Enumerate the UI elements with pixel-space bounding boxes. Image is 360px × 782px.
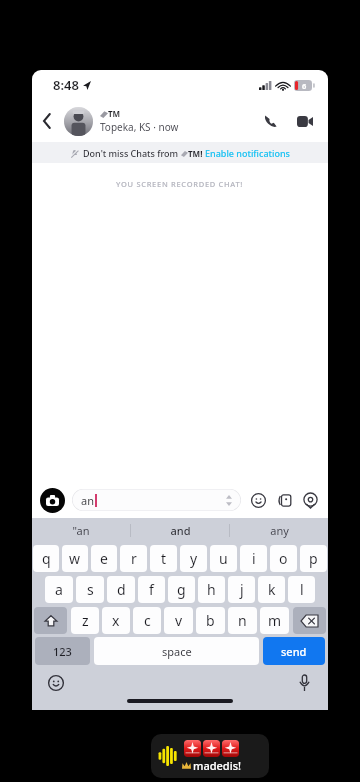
button[interactable]: Video call	[290, 106, 320, 136]
button[interactable]: z	[71, 607, 99, 634]
staticText: g	[177, 580, 186, 599]
staticText: 123	[53, 644, 72, 659]
staticText: e	[100, 549, 108, 568]
staticText: v	[175, 611, 183, 630]
staticText: Enable notifications	[205, 147, 290, 159]
staticText: u	[219, 549, 228, 568]
button[interactable]: Voice call	[256, 106, 286, 136]
button[interactable]: i	[240, 545, 267, 572]
button[interactable]: r	[120, 545, 147, 572]
button[interactable]: w	[62, 545, 88, 572]
button[interactable]: c	[133, 607, 161, 634]
button[interactable]: j	[228, 576, 255, 603]
staticText: y	[190, 549, 198, 568]
button[interactable]: Emoji keyboard	[46, 673, 66, 693]
button[interactable]: send	[263, 637, 325, 665]
button[interactable]: space	[94, 637, 259, 665]
staticText: madedis!	[193, 758, 241, 773]
staticText: "an	[72, 523, 90, 538]
staticText: l	[300, 580, 304, 599]
staticText: d	[117, 580, 126, 599]
button[interactable]: and	[131, 518, 229, 543]
button[interactable]: q	[33, 545, 59, 572]
staticText: 8:48	[53, 76, 79, 94]
staticText: j	[240, 580, 244, 599]
button[interactable]: an	[72, 489, 241, 511]
staticText: and	[170, 523, 191, 538]
button[interactable]: t	[150, 545, 177, 572]
staticText: i	[252, 549, 256, 568]
button[interactable]: 123	[35, 637, 90, 665]
staticText: any	[270, 523, 289, 538]
button[interactable]: y	[180, 545, 207, 572]
staticText: space	[162, 644, 192, 659]
staticText: f	[149, 580, 154, 599]
button[interactable]: Backspace	[293, 607, 326, 634]
button[interactable]: b	[196, 607, 225, 634]
button[interactable]: Back	[32, 106, 62, 136]
staticText: 6	[302, 81, 307, 91]
staticText: n	[238, 611, 247, 630]
staticText: b	[206, 611, 215, 630]
staticText: TM	[108, 108, 121, 119]
staticText: m	[268, 611, 282, 630]
staticText: c	[144, 611, 151, 630]
button[interactable]: k	[258, 576, 285, 603]
button[interactable]: "an	[32, 518, 130, 543]
button[interactable]: o	[270, 545, 297, 572]
button[interactable]: v	[164, 607, 193, 634]
button[interactable]: l	[288, 576, 315, 603]
button[interactable]: Location	[300, 490, 320, 510]
button[interactable]: h	[198, 576, 225, 603]
staticText: r	[131, 549, 137, 568]
staticText: Topeka, KS · now	[100, 120, 179, 134]
button[interactable]: Don't miss Chats from	[32, 142, 328, 163]
staticText: YOU SCREEN RECORDED CHAT!	[116, 179, 244, 189]
button[interactable]: s	[76, 576, 104, 603]
button[interactable]: e	[91, 545, 117, 572]
button[interactable]: u	[210, 545, 237, 572]
button[interactable]: Emoji	[248, 490, 268, 510]
button[interactable]: m	[260, 607, 289, 634]
staticText: z	[82, 611, 89, 630]
button[interactable]: x	[102, 607, 130, 634]
button[interactable]: Stickers	[274, 490, 294, 510]
button[interactable]: Camera	[40, 488, 65, 513]
staticText: h	[207, 580, 216, 599]
staticText: TM!	[188, 148, 205, 159]
staticText: an	[81, 493, 94, 508]
staticText: send	[281, 644, 307, 659]
staticText: x	[112, 611, 120, 630]
button[interactable]: Voice input	[294, 673, 314, 693]
button[interactable]: g	[168, 576, 195, 603]
button[interactable]: d	[107, 576, 135, 603]
staticText: Don't miss Chats from	[83, 147, 181, 159]
staticText: w	[69, 549, 81, 568]
staticText: t	[161, 549, 167, 568]
button[interactable]: n	[228, 607, 257, 634]
button[interactable]: TM	[100, 108, 256, 134]
staticText: k	[268, 580, 276, 599]
button[interactable]: f	[138, 576, 165, 603]
staticText: a	[55, 580, 63, 599]
button[interactable]: p	[300, 545, 327, 572]
button[interactable]: a	[45, 576, 73, 603]
button[interactable]: any	[230, 518, 328, 543]
staticText: p	[309, 549, 318, 568]
staticText: q	[42, 549, 51, 568]
button[interactable]: Shift	[34, 607, 67, 634]
staticText: o	[279, 549, 288, 568]
staticText: s	[87, 580, 94, 599]
